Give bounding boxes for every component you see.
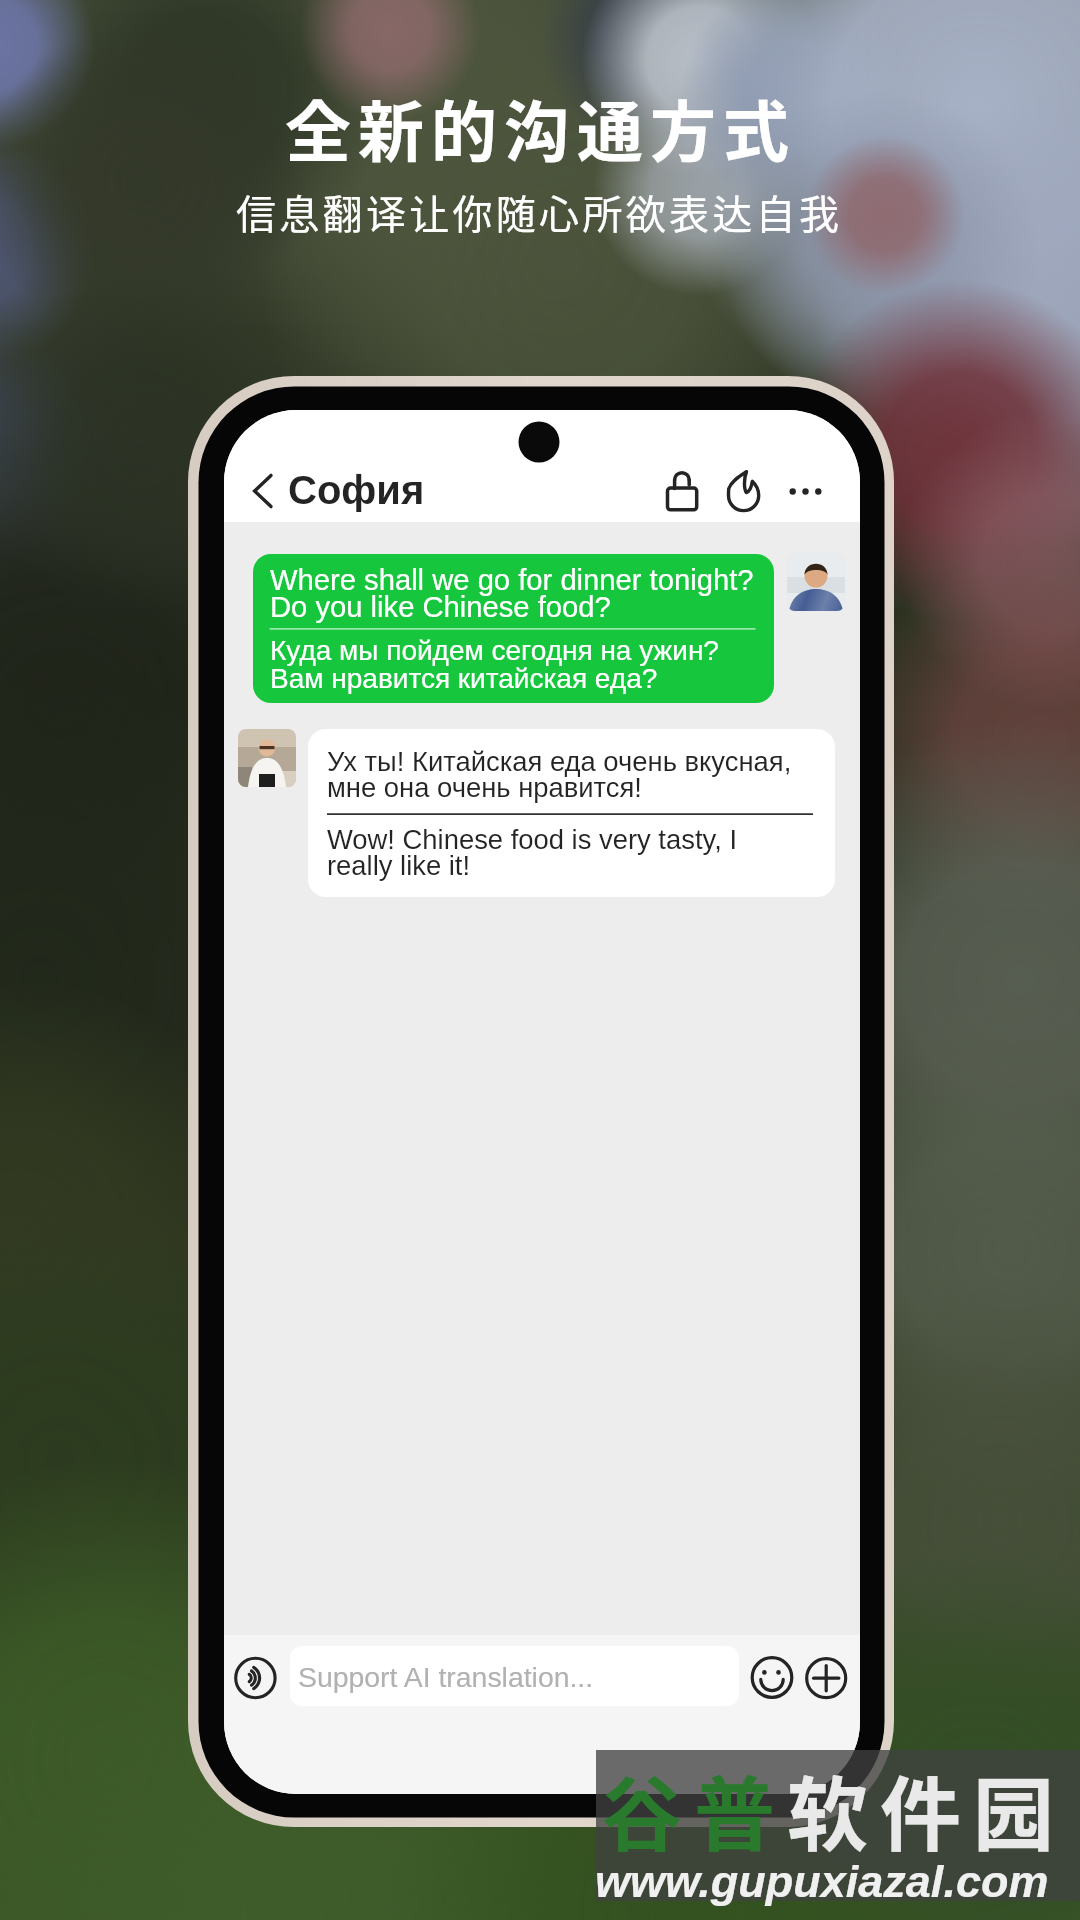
staticText: 谷普 — [601, 1750, 788, 1867]
staticText: really like it! — [327, 850, 471, 881]
button[interactable]: Encryption — [654, 462, 710, 520]
staticText: Ух ты! Китайская еда очень вкусная, — [327, 746, 792, 777]
button[interactable] — [290, 1646, 739, 1706]
button[interactable]: Avatar — [238, 729, 296, 787]
button[interactable]: Back — [236, 462, 286, 520]
button[interactable]: More options — [776, 462, 836, 520]
button[interactable] — [308, 729, 835, 897]
staticText: Wow! Chinese food is very tasty, I — [327, 824, 738, 855]
staticText: София — [288, 468, 425, 513]
staticText: 软件园 — [787, 1750, 1067, 1867]
staticText: Where shall we go for dinner tonight? — [270, 564, 754, 597]
button[interactable]: Voice message — [236, 1654, 284, 1702]
button[interactable]: Add — [806, 1656, 848, 1698]
button[interactable]: Emoji — [752, 1656, 794, 1698]
staticText: www.gupuxiazal.com — [595, 1856, 1049, 1906]
staticText: Вам нравится китайская еда? — [270, 663, 658, 694]
staticText: Куда мы пойдем сегодня на ужин? — [270, 635, 719, 666]
staticText: Support AI translation... — [298, 1661, 594, 1693]
staticText: 全新的沟通方式 — [285, 79, 796, 175]
button[interactable]: Hot chat — [715, 462, 773, 520]
staticText: Do you like Chinese food? — [270, 591, 611, 624]
button[interactable]: Avatar — [787, 553, 845, 611]
staticText: мне она очень нравится! — [327, 772, 642, 803]
staticText: 信息翻译让你随心所欲表达自我 — [236, 183, 843, 241]
button[interactable] — [253, 554, 774, 703]
